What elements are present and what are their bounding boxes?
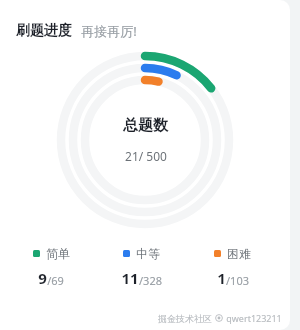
staticText: /69 <box>47 273 64 288</box>
staticText: 再接再厉! <box>81 22 137 40</box>
button[interactable]: 刷题进度 <box>16 22 274 40</box>
staticText: qwert123211 <box>226 312 282 324</box>
button[interactable]: 困难 <box>187 244 278 290</box>
staticText: 11 <box>121 268 139 288</box>
staticText: 1 <box>217 268 226 288</box>
staticText: 困难 <box>227 246 251 261</box>
staticText: 总题数 <box>123 116 168 135</box>
button[interactable]: 中等 <box>96 244 187 290</box>
staticText: 刷题进度 <box>16 22 72 40</box>
staticText: /328 <box>139 273 162 288</box>
staticText: 21/ 500 <box>125 148 167 164</box>
staticText: 简单 <box>46 246 70 261</box>
staticText: 掘金技术社区 <box>158 313 212 324</box>
staticText: 9 <box>38 268 47 288</box>
staticText: 中等 <box>136 246 160 261</box>
button[interactable]: 简单 <box>6 244 96 290</box>
staticText: /103 <box>226 273 249 288</box>
